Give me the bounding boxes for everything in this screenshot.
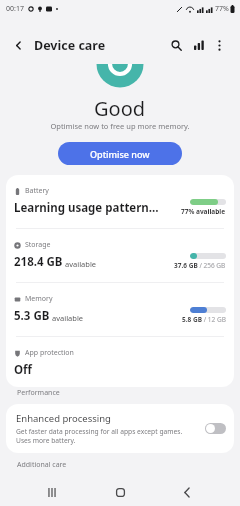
staticText: Device care — [34, 37, 106, 54]
button[interactable]: Battery — [6, 175, 234, 228]
staticText: Storage — [25, 240, 51, 250]
staticText: Enhanced processing — [16, 412, 111, 425]
button[interactable]: Recent apps — [37, 478, 67, 506]
button[interactable]: Optimise now — [58, 142, 182, 165]
staticText: Optimise now — [90, 148, 150, 160]
staticText: Get faster data processing for all apps … — [16, 427, 183, 444]
button[interactable]: Memory — [6, 283, 234, 336]
button[interactable]: Back — [172, 478, 202, 506]
staticText: available — [65, 259, 97, 269]
button[interactable]: Enhanced processing toggle — [205, 423, 226, 434]
staticText: 77% available — [181, 207, 226, 216]
staticText: Optimise now to free up more memory. — [50, 121, 190, 131]
staticText: Memory — [25, 294, 53, 304]
staticText: available — [52, 313, 84, 323]
staticText: Performance — [17, 388, 60, 398]
staticText: Off — [14, 362, 32, 378]
button[interactable]: Enhanced processing — [6, 404, 234, 453]
button[interactable]: Home — [105, 478, 135, 506]
staticText: 5.8 GB / 12 GB — [182, 315, 226, 324]
button[interactable]: Storage — [6, 229, 234, 282]
staticText: 00:17 — [6, 4, 24, 14]
staticText: 5.3 GB — [14, 308, 50, 324]
button[interactable]: Search — [165, 32, 187, 58]
staticText: App protection — [25, 348, 74, 358]
staticText: 37.6 GB / 256 GB — [174, 261, 226, 270]
staticText: Battery — [25, 186, 49, 196]
button[interactable]: Usage statistics — [188, 32, 210, 58]
button[interactable]: Navigate up — [7, 32, 29, 58]
staticText: Additional care — [17, 460, 67, 470]
staticText: 77% — [215, 4, 229, 14]
button[interactable]: More options — [208, 32, 230, 58]
button[interactable]: App protection — [6, 337, 234, 387]
staticText: Learning usage patterns... — [14, 200, 164, 216]
staticText: 218.4 GB — [14, 254, 63, 270]
staticText: Good — [94, 95, 146, 122]
